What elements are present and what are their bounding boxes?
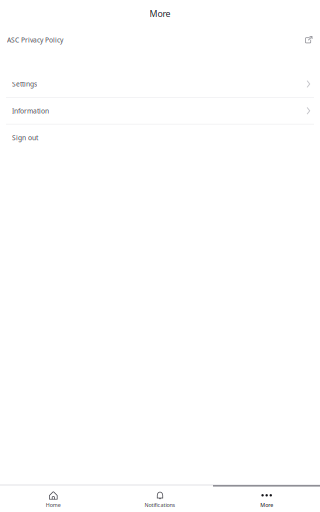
button[interactable]: More xyxy=(213,486,320,512)
button[interactable]: Settings xyxy=(0,71,320,97)
staticText: More xyxy=(149,7,170,19)
button[interactable]: Information xyxy=(0,98,320,124)
button[interactable]: Sign out xyxy=(0,125,320,151)
staticText: More xyxy=(260,501,273,509)
staticText: Notifications xyxy=(144,501,175,509)
button[interactable]: Notifications xyxy=(107,486,213,512)
staticText: Information xyxy=(12,106,49,115)
button[interactable]: Home xyxy=(0,486,107,512)
button[interactable]: ASC Privacy Policy xyxy=(0,27,320,53)
staticText: Home xyxy=(46,501,61,509)
staticText: Settings xyxy=(12,79,37,89)
staticText: Sign out xyxy=(12,133,38,142)
staticText: ASC Privacy Policy xyxy=(7,35,63,45)
